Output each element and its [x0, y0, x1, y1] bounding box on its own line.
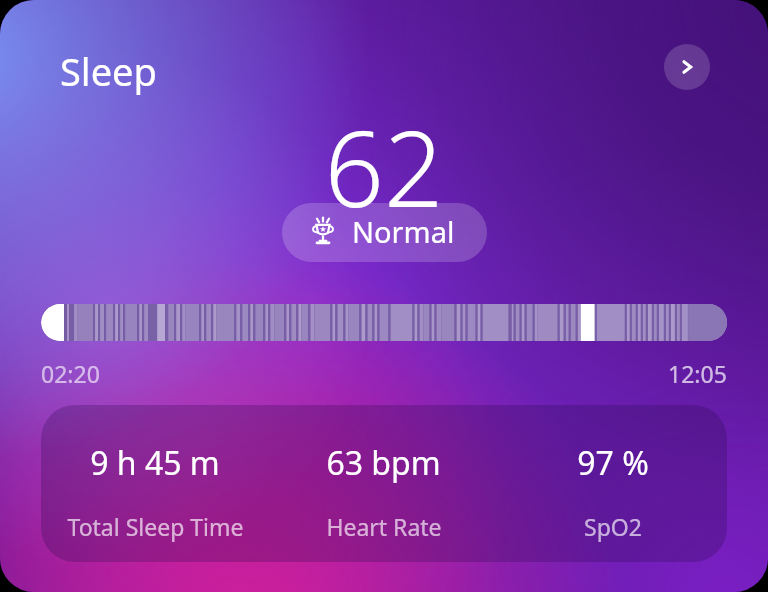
staticText: 9 h 45 m [90, 441, 220, 485]
staticText: Heart Rate [326, 511, 442, 542]
staticText: 02:20 [41, 358, 100, 389]
staticText: 12:05 [668, 358, 727, 389]
staticText: 63 bpm [326, 441, 441, 485]
staticText: Total Sleep Time [67, 511, 244, 542]
staticText: 62 [0, 96, 768, 238]
button[interactable]: Open sleep details [664, 44, 710, 90]
staticText: SpO2 [584, 511, 642, 542]
button[interactable] [41, 304, 727, 341]
staticText: 97 % [577, 441, 649, 485]
staticText: Sleep [60, 45, 157, 97]
button[interactable]: Normal [282, 203, 487, 262]
button[interactable]: 9 h 45 m [41, 405, 727, 562]
staticText: Normal [352, 212, 455, 251]
